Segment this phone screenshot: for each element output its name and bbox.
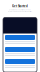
staticText: Get Started — [12, 4, 28, 8]
staticText: Create an account to track your — [9, 9, 31, 11]
staticText: orders and save your favourites. — [8, 11, 32, 12]
